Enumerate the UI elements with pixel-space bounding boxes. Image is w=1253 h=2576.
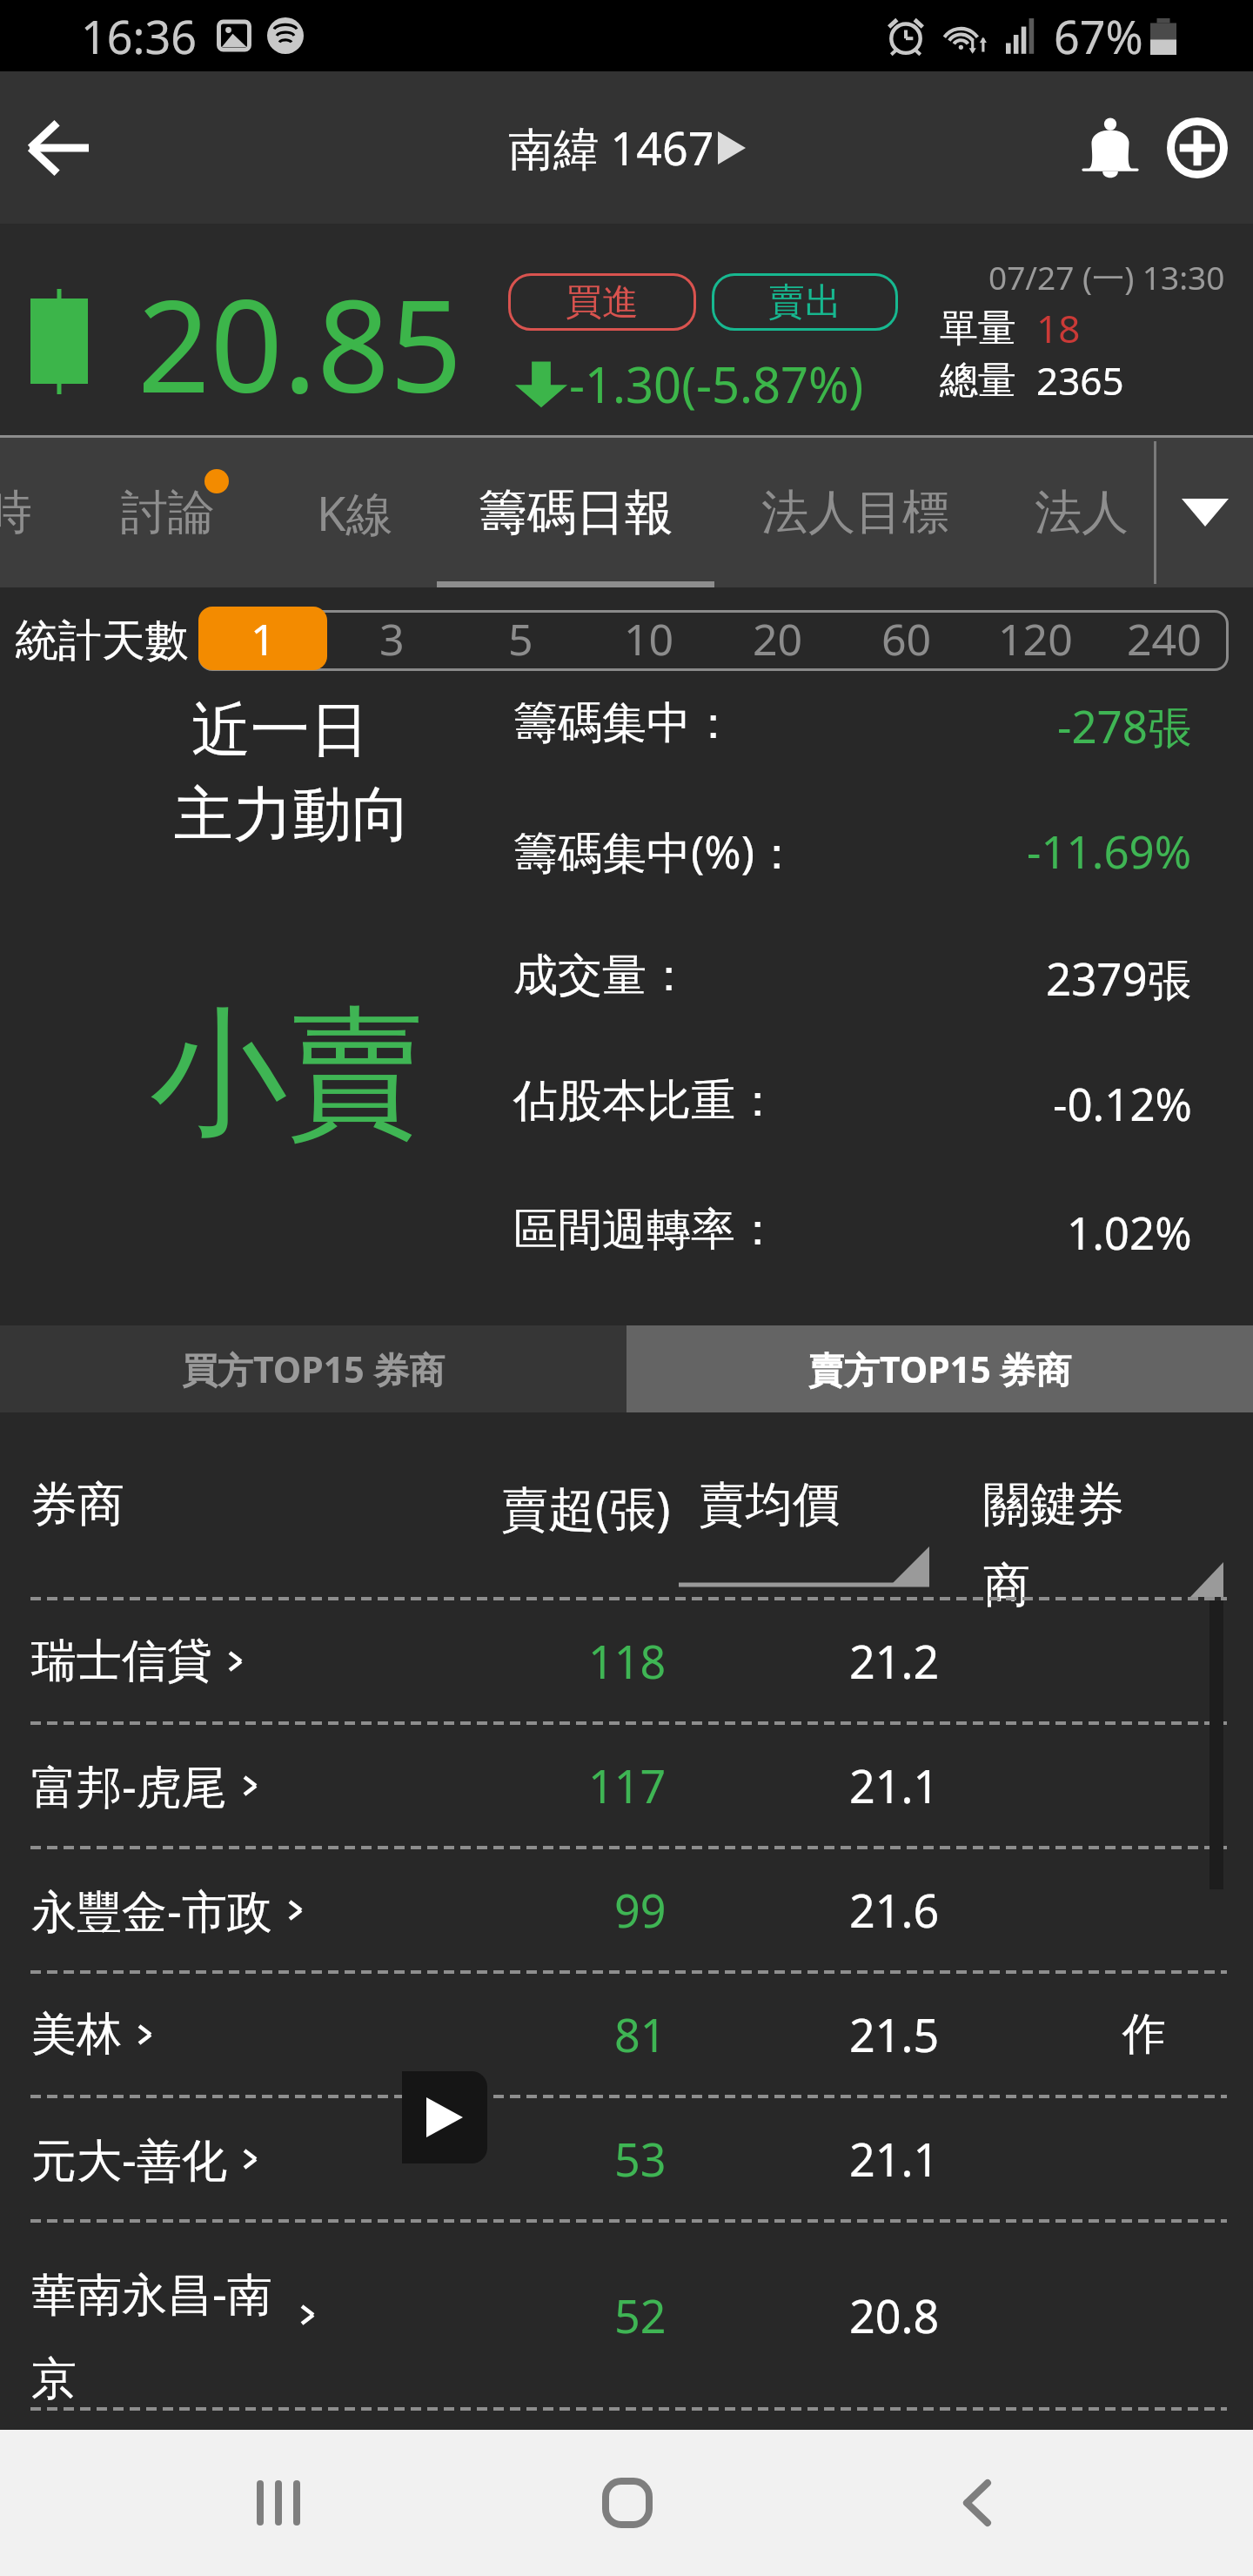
staticText: 21.6 bbox=[849, 1879, 940, 1941]
staticText: 成交量： bbox=[513, 948, 691, 1003]
button[interactable]: 時 bbox=[0, 438, 61, 587]
button[interactable]: 買進 bbox=[508, 273, 696, 331]
staticText: 21.5 bbox=[849, 2003, 940, 2065]
staticText: 法人 bbox=[1035, 483, 1129, 542]
button[interactable]: 討論 bbox=[68, 438, 268, 587]
button[interactable]: 籌碼日報 bbox=[437, 438, 714, 587]
staticText: 美林 bbox=[31, 2006, 122, 2063]
staticText: 討論 bbox=[121, 483, 215, 542]
staticText: 21.1 bbox=[849, 1754, 940, 1816]
button[interactable]: 美林 bbox=[0, 1974, 1253, 2095]
staticText: 2379張 bbox=[1046, 948, 1192, 1009]
button[interactable]: Add to watchlist bbox=[1154, 104, 1241, 191]
staticText: 20.85 bbox=[137, 257, 463, 430]
button[interactable]: 10 bbox=[585, 607, 714, 670]
staticText: 117 bbox=[588, 1754, 667, 1816]
staticText: 近一日 bbox=[191, 694, 369, 768]
staticText: 統計天數 bbox=[15, 614, 189, 668]
staticText: 20.8 bbox=[849, 2284, 940, 2346]
button[interactable]: 華南永昌-南京 bbox=[0, 2223, 1253, 2407]
staticText: 小賣 bbox=[150, 988, 425, 1161]
staticText: 52 bbox=[614, 2284, 667, 2346]
staticText: 67% bbox=[1054, 5, 1143, 67]
staticText: 元大-善化 bbox=[31, 2128, 227, 2190]
button[interactable]: 賣出 bbox=[712, 273, 898, 331]
button[interactable]: 富邦-虎尾 bbox=[0, 1725, 1253, 1846]
staticText: 關鍵券 商 bbox=[983, 1475, 1124, 1615]
staticText: 5 bbox=[508, 609, 533, 668]
staticText: 16:36 bbox=[81, 5, 197, 67]
staticText: 買方TOP15 券商 bbox=[182, 1345, 446, 1393]
staticText: 籌碼集中： bbox=[513, 695, 735, 751]
staticText: 賣方TOP15 券商 bbox=[808, 1345, 1072, 1393]
staticText: -278張 bbox=[1057, 695, 1192, 756]
staticText: 瑞士信貸 bbox=[31, 1633, 212, 1690]
staticText: 作 bbox=[1122, 2007, 1166, 2062]
button[interactable]: K線 bbox=[277, 438, 433, 587]
button[interactable]: 120 bbox=[971, 607, 1100, 670]
button[interactable]: 法人 bbox=[1009, 438, 1153, 587]
staticText: 3 bbox=[379, 609, 405, 668]
staticText: 賣出 bbox=[768, 279, 841, 325]
staticText: 籌碼日報 bbox=[479, 482, 673, 544]
staticText: 1 bbox=[251, 609, 276, 668]
staticText: 20 bbox=[753, 609, 803, 668]
staticText: 法人目標 bbox=[761, 483, 949, 542]
button[interactable]: More tabs bbox=[1156, 438, 1253, 587]
staticText: 買進 bbox=[566, 279, 639, 325]
button[interactable]: 60 bbox=[842, 607, 971, 670]
staticText: 總量 bbox=[940, 357, 1016, 405]
staticText: 81 bbox=[614, 2003, 667, 2065]
staticText: 21.1 bbox=[849, 2128, 940, 2190]
staticText: 07/27 (一) 13:30 bbox=[988, 255, 1225, 299]
staticText: 華南永昌-南京 bbox=[31, 2262, 284, 2407]
staticText: 南緯 1467 bbox=[508, 117, 714, 178]
staticText: -1.30(-5.87%) bbox=[569, 351, 864, 417]
staticText: K線 bbox=[317, 480, 393, 545]
staticText: 240 bbox=[1127, 609, 1202, 668]
staticText: 60 bbox=[881, 609, 932, 668]
staticText: 佔股本比重： bbox=[513, 1073, 780, 1129]
staticText: 時 bbox=[0, 483, 32, 542]
button[interactable]: Back bbox=[10, 100, 106, 196]
staticText: 永豐金-市政 bbox=[31, 1879, 272, 1941]
staticText: -11.69% bbox=[1027, 821, 1192, 881]
staticText: 10 bbox=[624, 609, 674, 668]
button[interactable]: 賣方TOP15 券商 bbox=[626, 1325, 1253, 1412]
staticText: 賣均價 bbox=[699, 1475, 840, 1534]
staticText: 區間週轉率： bbox=[513, 1202, 780, 1258]
staticText: 99 bbox=[614, 1879, 667, 1941]
staticText: 18 bbox=[1036, 302, 1081, 354]
staticText: 53 bbox=[614, 2128, 667, 2190]
button[interactable]: 瑞士信貸 bbox=[0, 1600, 1253, 1721]
staticText: 券商 bbox=[30, 1475, 124, 1534]
button[interactable]: 買方TOP15 券商 bbox=[0, 1325, 626, 1412]
staticText: 主力動向 bbox=[174, 778, 411, 853]
staticText: 1.02% bbox=[1067, 1202, 1192, 1262]
button[interactable]: 240 bbox=[1100, 607, 1229, 670]
button[interactable]: 3 bbox=[327, 607, 456, 670]
button[interactable]: 永豐金-市政 bbox=[0, 1849, 1253, 1970]
button[interactable]: 法人目標 bbox=[735, 438, 975, 587]
staticText: 單量 bbox=[940, 305, 1016, 352]
button[interactable]: 南緯 1467 bbox=[508, 117, 746, 178]
staticText: 籌碼集中(%)： bbox=[513, 821, 799, 882]
staticText: 富邦-虎尾 bbox=[31, 1754, 227, 1816]
staticText: -0.12% bbox=[1053, 1073, 1192, 1133]
staticText: 賣超(張) bbox=[501, 1475, 671, 1540]
button[interactable]: Back bbox=[873, 2430, 1082, 2576]
button[interactable]: 5 bbox=[456, 607, 585, 670]
button[interactable]: Recent apps bbox=[174, 2430, 383, 2576]
button[interactable]: 1 bbox=[198, 607, 327, 670]
button[interactable]: Home bbox=[523, 2430, 732, 2576]
staticText: 120 bbox=[998, 609, 1073, 668]
staticText: 21.2 bbox=[849, 1630, 940, 1692]
staticText: 2365 bbox=[1036, 354, 1124, 406]
staticText: 118 bbox=[588, 1630, 667, 1692]
button[interactable]: Play bbox=[402, 2071, 487, 2163]
button[interactable]: Notifications bbox=[1067, 104, 1154, 191]
button[interactable]: 20 bbox=[714, 607, 842, 670]
button[interactable]: 元大-善化 bbox=[0, 2098, 1253, 2219]
